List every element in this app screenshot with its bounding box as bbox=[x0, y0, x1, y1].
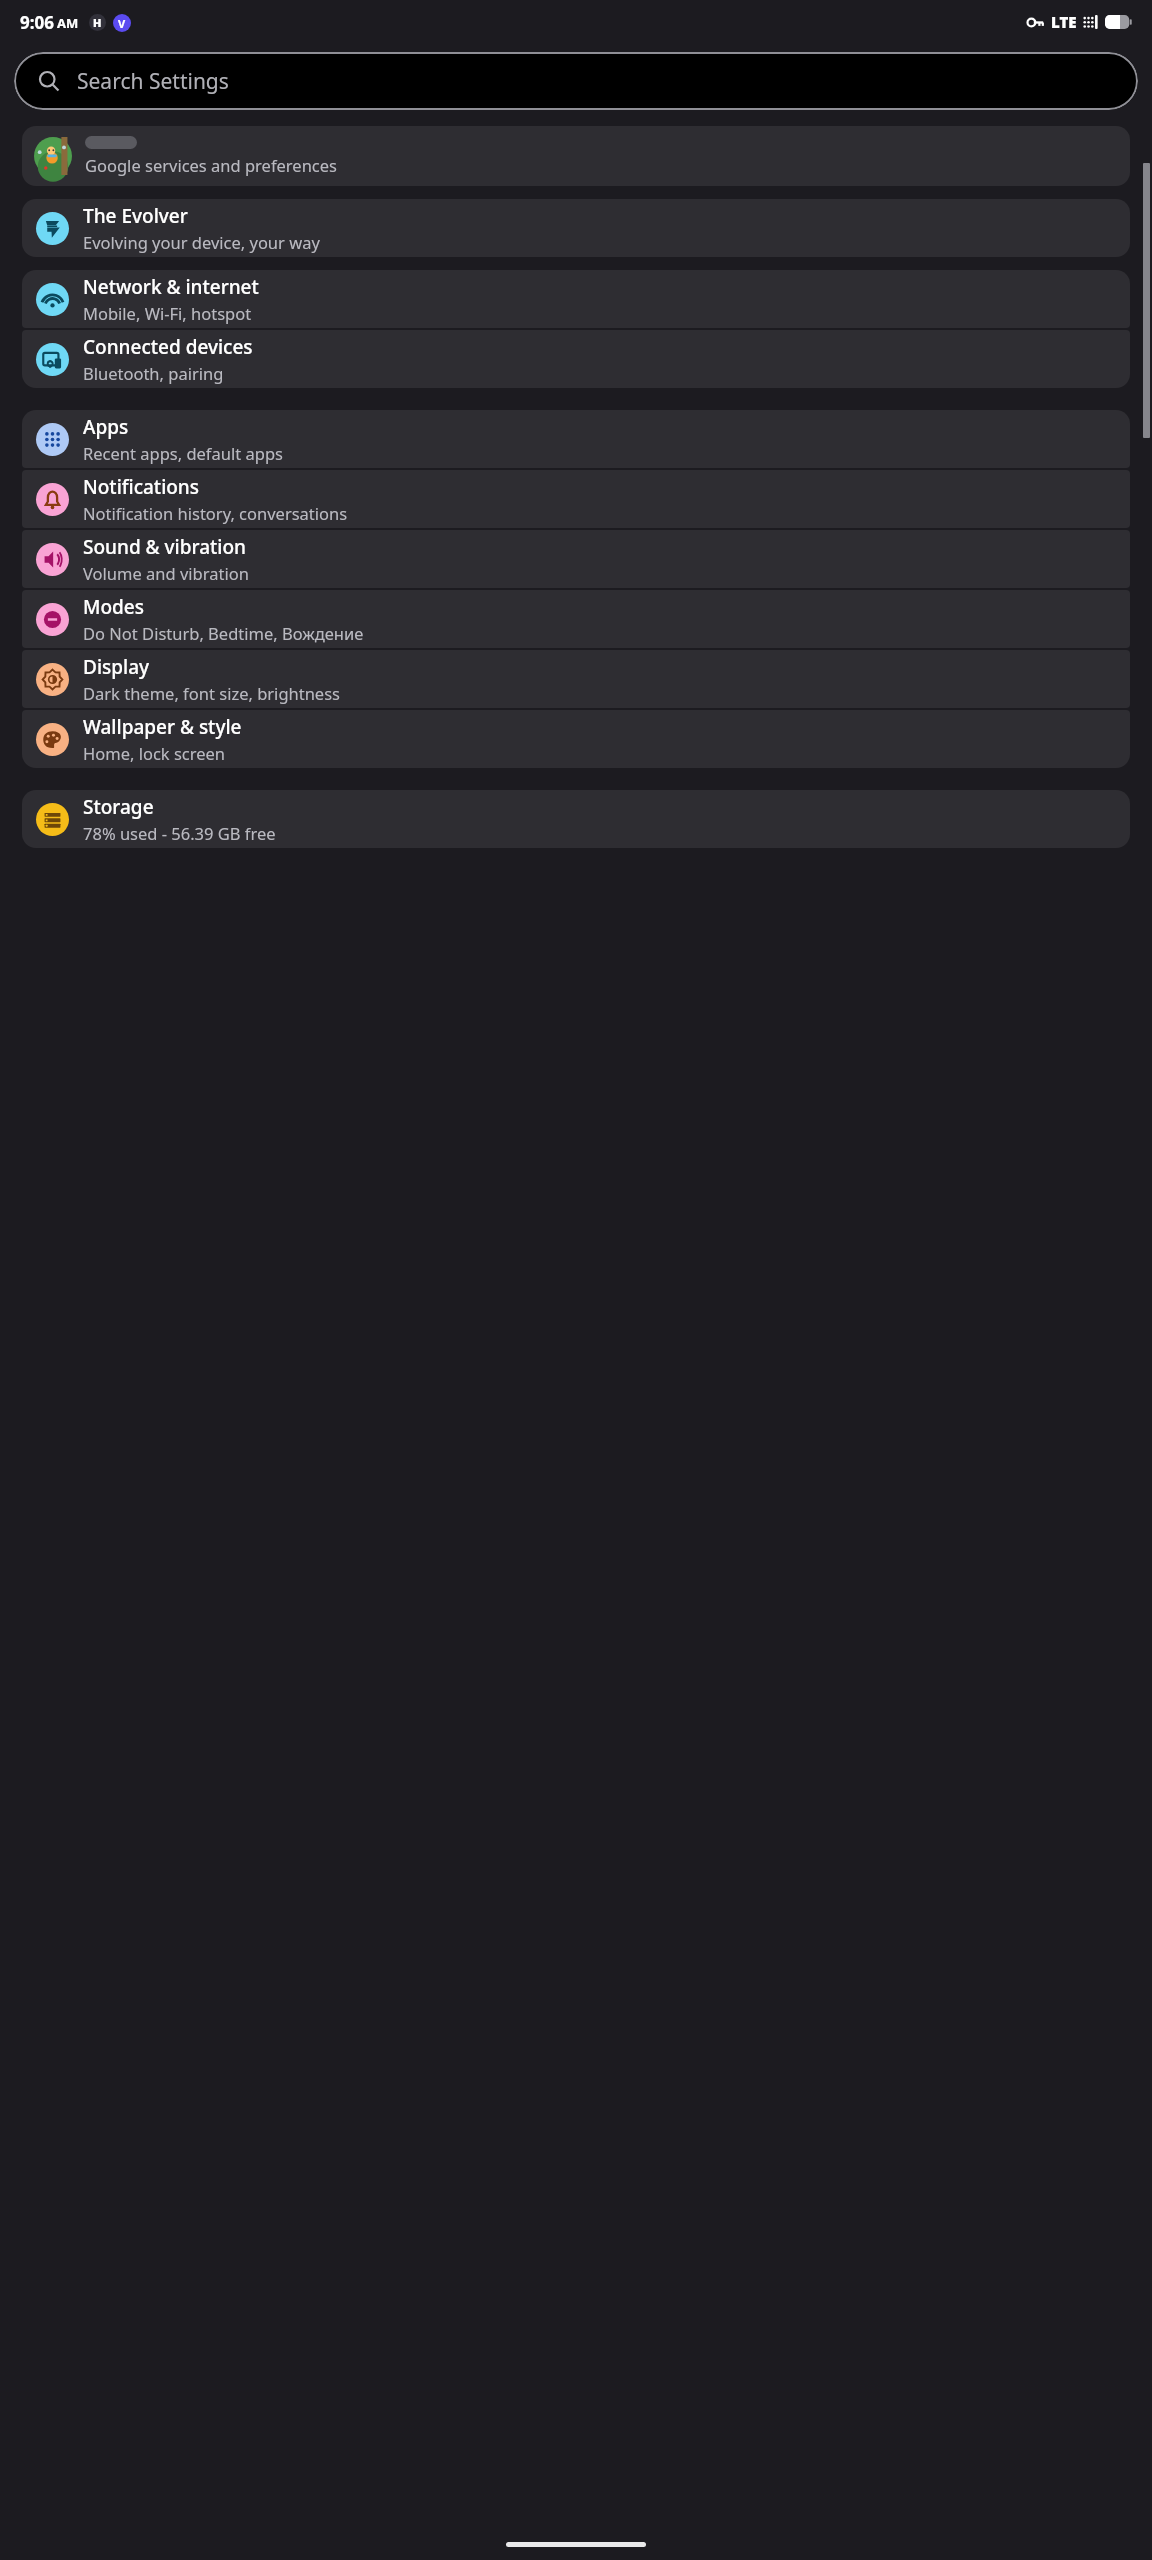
button[interactable]: Connected devices bbox=[22, 330, 1130, 388]
button[interactable]: Modes bbox=[22, 590, 1130, 648]
staticText: Apps bbox=[83, 414, 129, 440]
button[interactable]: Wallpaper & style bbox=[22, 710, 1130, 768]
staticText: Notification history, conversations bbox=[83, 502, 348, 524]
staticText: Bluetooth, pairing bbox=[83, 362, 224, 384]
staticText: Sound & vibration bbox=[83, 534, 246, 560]
staticText: Modes bbox=[83, 594, 144, 620]
staticText: Display bbox=[83, 654, 150, 680]
button[interactable]: Storage bbox=[22, 790, 1130, 848]
staticText: 9:06 bbox=[20, 11, 54, 34]
button[interactable]: Network & internet bbox=[22, 270, 1130, 328]
staticText: Recent apps, default apps bbox=[83, 442, 283, 464]
staticText: Storage bbox=[83, 794, 154, 820]
button[interactable]: Notifications bbox=[22, 470, 1130, 528]
staticText: H bbox=[93, 15, 102, 30]
staticText: AM bbox=[57, 14, 79, 32]
staticText: Evolving your device, your way bbox=[83, 231, 320, 253]
staticText: 78% used - 56.39 GB free bbox=[83, 822, 276, 844]
button[interactable]: Display bbox=[22, 650, 1130, 708]
staticText: Search Settings bbox=[77, 67, 229, 96]
button[interactable]: Sound & vibration bbox=[22, 530, 1130, 588]
staticText: Notifications bbox=[83, 474, 200, 500]
button[interactable]: Google services and preferences bbox=[22, 126, 1130, 186]
staticText: Dark theme, font size, brightness bbox=[83, 682, 340, 704]
staticText: The Evolver bbox=[83, 203, 188, 229]
staticText: Network & internet bbox=[83, 274, 259, 300]
button[interactable]: The Evolver bbox=[22, 199, 1130, 257]
staticText: Mobile, Wi-Fi, hotspot bbox=[83, 302, 252, 324]
staticText: Google services and preferences bbox=[85, 154, 337, 176]
staticText: LTE bbox=[1051, 12, 1077, 32]
staticText: Connected devices bbox=[83, 334, 253, 360]
staticText: Volume and vibration bbox=[83, 562, 249, 584]
staticText: Do Not Disturb, Bedtime, Вождение bbox=[83, 622, 364, 644]
staticText: Wallpaper & style bbox=[83, 714, 242, 740]
button[interactable]: Search Settings bbox=[14, 52, 1138, 110]
button[interactable]: Apps bbox=[22, 410, 1130, 468]
staticText: Home, lock screen bbox=[83, 742, 226, 764]
staticText: V bbox=[118, 16, 126, 31]
